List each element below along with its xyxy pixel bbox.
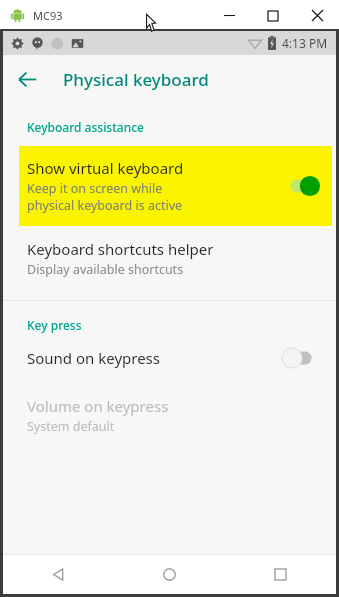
button[interactable]: Keyboard shortcuts helper [3,226,336,291]
staticText: physical keyboard is active [27,197,183,214]
staticText: Keep it on screen while [27,180,163,197]
staticText: Key press [27,317,82,333]
button[interactable]: Minimize [207,0,251,31]
staticText: System default [27,418,115,435]
button[interactable]: Recent apps [225,554,336,594]
staticText: MC93 [33,8,63,23]
button[interactable]: Back [3,55,51,103]
button[interactable]: Back [3,554,114,594]
staticText: Volume on keypress [27,396,169,416]
button[interactable]: Volume on keypress [3,383,336,448]
staticText: Keyboard shortcuts helper [27,239,214,259]
staticText: Keyboard assistance [27,119,144,135]
button[interactable]: Home [114,554,225,594]
staticText: 4:13 PM [282,35,328,51]
staticText: Display available shortcuts [27,261,184,278]
button[interactable]: Close [295,0,339,31]
button[interactable]: Show virtual keyboard [19,146,332,226]
staticText: Physical keyboard [63,68,209,91]
button[interactable]: Sound on keypress [3,333,336,383]
button[interactable]: Maximize [251,0,295,31]
staticText: Sound on keypress [27,348,160,368]
staticText: Show virtual keyboard [27,158,184,178]
